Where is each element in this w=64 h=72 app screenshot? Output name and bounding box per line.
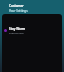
staticText: subtitle here	[9, 31, 24, 34]
button[interactable]: Stay Warm	[2, 24, 62, 36]
staticText: Customer	[9, 4, 24, 8]
staticText: Stay Warm	[9, 27, 26, 31]
button[interactable]	[2, 14, 62, 24]
staticText: Your Settings	[9, 9, 28, 13]
